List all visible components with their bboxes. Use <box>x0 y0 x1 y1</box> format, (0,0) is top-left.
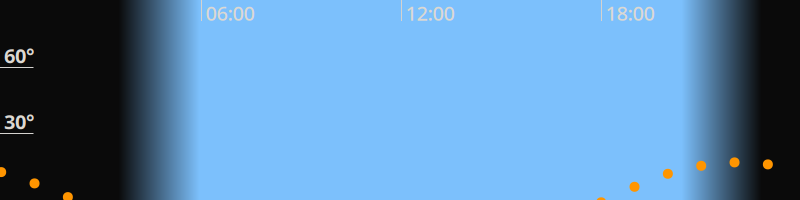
staticText: 12:00 <box>405 0 454 26</box>
staticText: 30° <box>4 108 34 135</box>
staticText: 18:00 <box>605 0 654 26</box>
staticText: 06:00 <box>205 0 254 26</box>
staticText: 60° <box>4 42 34 69</box>
